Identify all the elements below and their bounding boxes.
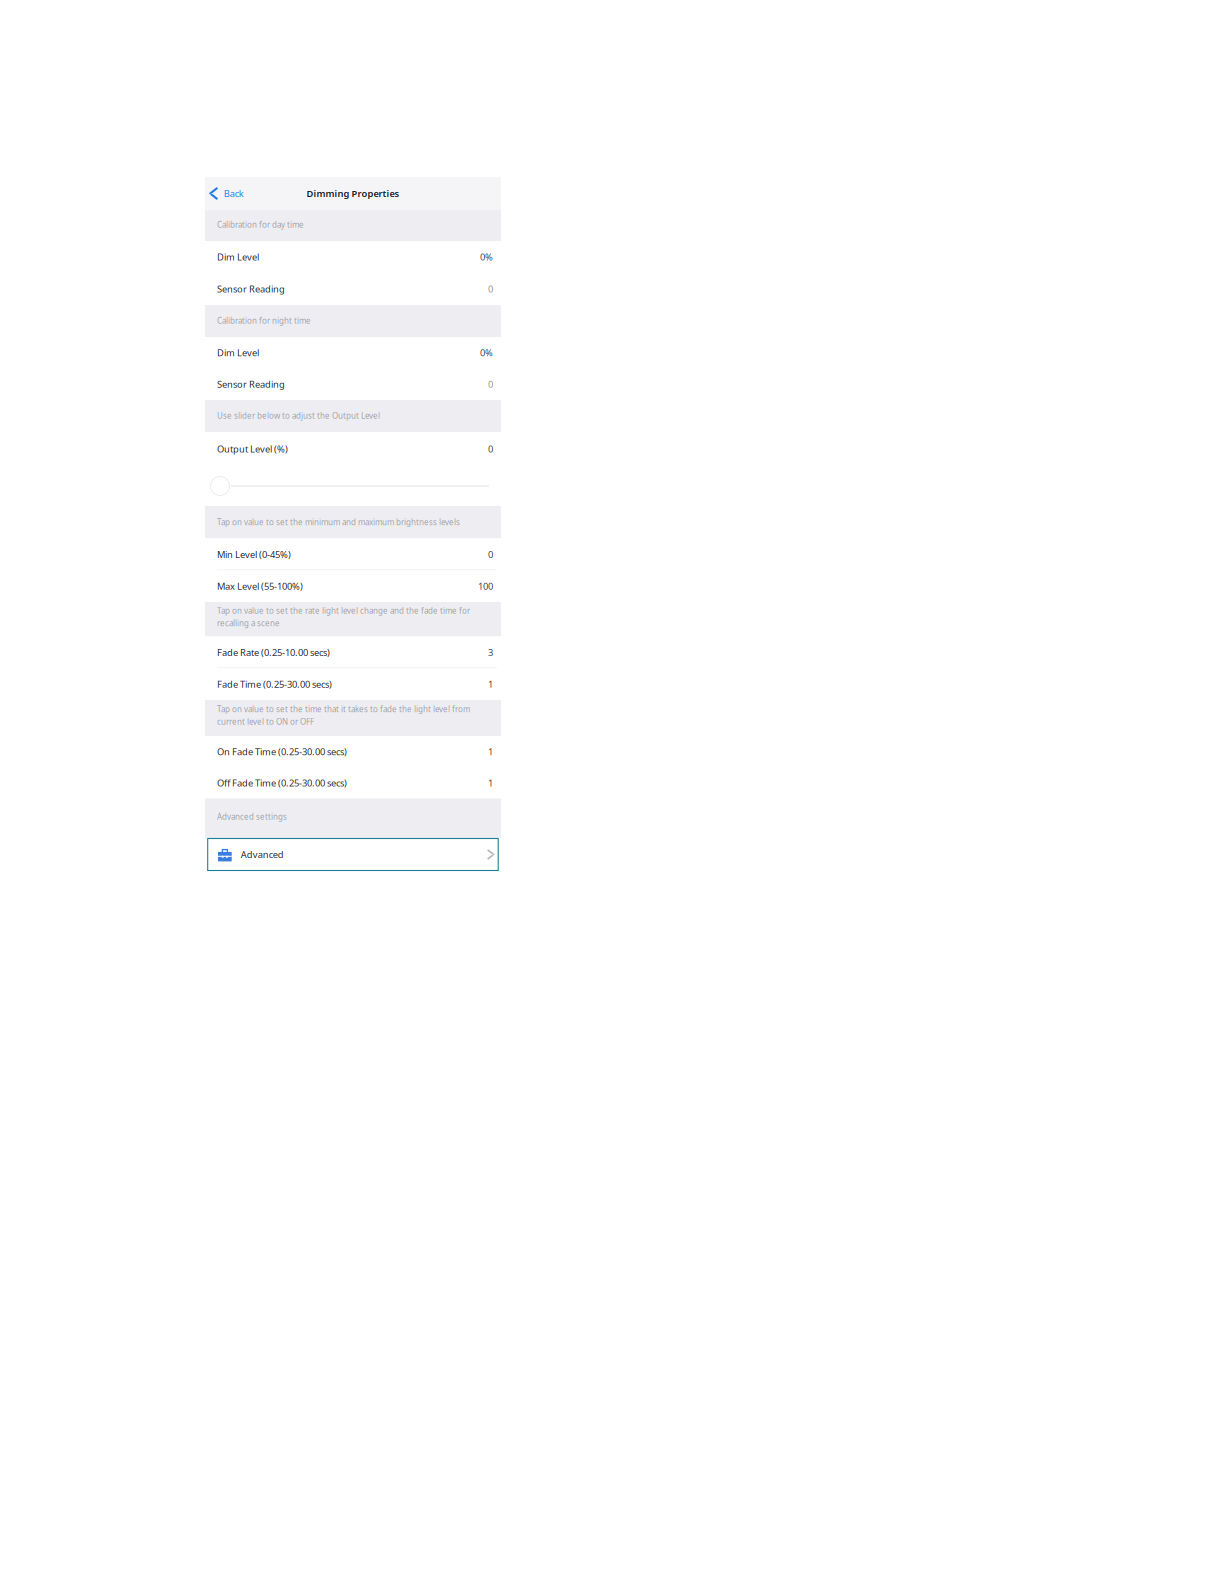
staticText: Calibration for day time [217,219,304,230]
staticText: Back [224,187,244,200]
staticText: Use slider below to adjust the Output Le… [217,410,380,421]
staticText: Dimming Properties [306,187,399,200]
staticText: 1 [488,777,493,789]
button[interactable]: Fade Rate (0.25-10.00 secs) [205,636,501,668]
button[interactable]: On Fade Time (0.25-30.00 secs) [205,736,501,767]
staticText: 0 [488,548,493,561]
staticText: Tap on value to set the time that it tak… [217,704,470,727]
staticText: Tap on value to set the minimum and maxi… [217,517,460,527]
staticText: Calibration for night time [217,315,311,326]
staticText: Sensor Reading [217,283,285,295]
staticText: 3 [488,646,493,659]
button[interactable]: Max Level (55-100%) [205,570,501,602]
staticText: 0 [488,443,493,455]
staticText: 0% [480,251,493,263]
staticText: Sensor Reading [217,378,285,390]
staticText: 0% [480,347,493,359]
staticText: Dim Level [217,347,259,359]
staticText: Fade Time (0.25-30.00 secs) [217,678,332,690]
staticText: 1 [488,678,493,690]
staticText: Tap on value to set the rate light level… [217,605,470,628]
button[interactable]: Dim Level [205,241,501,273]
staticText: Advanced settings [217,811,287,822]
button[interactable]: Fade Time (0.25-30.00 secs) [205,668,501,700]
button[interactable]: Back [205,179,244,208]
staticText: Fade Rate (0.25-10.00 secs) [217,646,330,659]
button[interactable]: Advanced [205,838,501,871]
staticText: Min Level (0-45%) [217,548,291,561]
staticText: Advanced [241,848,284,861]
button[interactable]: Min Level (0-45%) [205,538,501,570]
staticText: Off Fade Time (0.25-30.00 secs) [217,777,347,789]
staticText: 0 [488,378,493,390]
staticText: 0 [488,283,493,295]
button[interactable]: Dim Level [205,337,501,368]
button[interactable]: Off Fade Time (0.25-30.00 secs) [205,767,501,798]
button[interactable]: Sensor Reading [205,273,501,305]
button[interactable]: Output Level (%) [205,432,501,466]
staticText: On Fade Time (0.25-30.00 secs) [217,745,347,758]
staticText: 1 [488,745,493,758]
button[interactable]: Sensor Reading [205,368,501,400]
staticText: Dim Level [217,251,259,263]
staticText: Max Level (55-100%) [217,580,303,592]
staticText: Output Level (%) [217,443,288,455]
staticText: 100 [478,580,493,592]
